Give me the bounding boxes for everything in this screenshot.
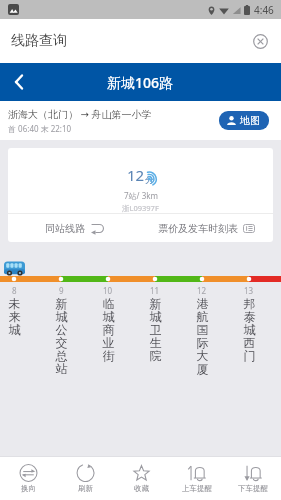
staticText: 13 <box>244 285 254 296</box>
button[interactable]: 12 <box>179 285 225 376</box>
button[interactable]: 换向 <box>0 464 57 500</box>
button[interactable]: 上车提醒 <box>169 464 225 500</box>
button[interactable]: 刷新 <box>57 464 113 500</box>
staticText: 换向 <box>21 484 36 493</box>
staticText: 未来城 <box>8 296 21 337</box>
button[interactable]: 10 <box>85 285 131 363</box>
staticText: 新城106路 <box>107 73 174 92</box>
staticText: 线路查询 <box>11 32 67 50</box>
staticText: 10 <box>103 285 113 296</box>
staticText: 地图 <box>240 114 260 127</box>
staticText: 收藏 <box>134 484 149 493</box>
staticText: 浙L09397F <box>122 203 159 213</box>
button[interactable]: 下车提醒 <box>225 464 281 500</box>
staticText: 港航国际大厦 <box>196 296 209 376</box>
staticText: 下车提醒 <box>238 484 268 493</box>
staticText: 临城商业街 <box>102 296 115 363</box>
staticText: 新城公交总站 <box>55 296 68 376</box>
button[interactable]: 同站线路 <box>8 214 140 242</box>
button[interactable]: Back <box>5 68 33 96</box>
staticText: 4:46 <box>254 3 274 17</box>
staticText: 邦泰城西门 <box>243 296 256 363</box>
staticText: 新城卫生院 <box>149 296 162 363</box>
button[interactable]: 11 <box>132 285 178 363</box>
button[interactable]: 8 <box>0 285 37 337</box>
staticText: 12 <box>197 285 207 296</box>
staticText: 刷新 <box>78 484 93 493</box>
staticText: 同站线路 <box>45 222 85 235</box>
staticText: 8 <box>12 285 17 296</box>
button[interactable]: 13 <box>226 285 272 363</box>
staticText: 11 <box>150 285 160 296</box>
staticText: 浙海大（北门） → 舟山第一小学 <box>8 107 152 121</box>
button[interactable]: Close <box>249 30 271 52</box>
button[interactable]: 地图 <box>219 111 269 130</box>
staticText: 票价及发车时刻表 <box>158 222 238 235</box>
button[interactable]: 票价及发车时刻表 <box>140 214 273 242</box>
button[interactable]: 9 <box>38 285 84 376</box>
staticText: 7站/ 3km <box>124 190 158 201</box>
staticText: 9 <box>59 285 64 296</box>
staticText: 上车提醒 <box>182 484 212 493</box>
button[interactable]: 收藏 <box>113 464 169 500</box>
staticText: 首 06:40 末 22:10 <box>8 123 72 134</box>
staticText: 12 <box>127 165 145 185</box>
staticText: 分 <box>145 174 154 185</box>
